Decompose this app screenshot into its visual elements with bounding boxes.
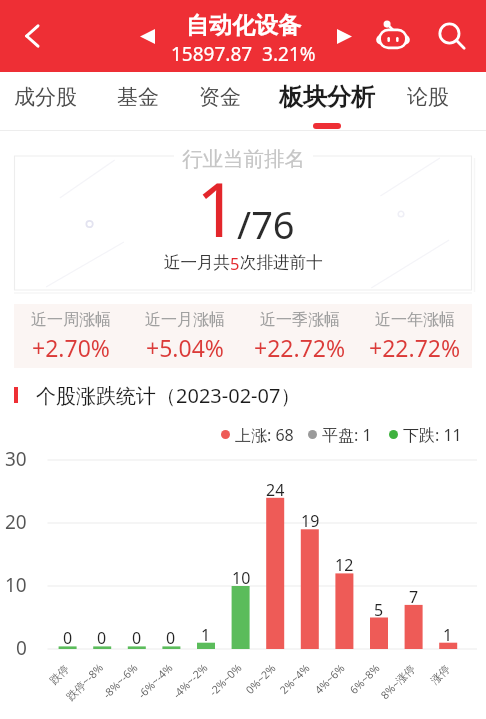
staticText: 0 [97, 627, 107, 649]
staticText: 近一月共 [164, 252, 230, 273]
button[interactable]: 资金 [184, 72, 256, 130]
staticText: 个股涨跌统计（2023-02-07） [36, 382, 301, 409]
button[interactable]: Previous sector [129, 18, 165, 54]
staticText: 次排进前十 [240, 252, 323, 273]
staticText: 成分股 [14, 84, 77, 110]
button[interactable]: 成分股 [9, 72, 81, 130]
staticText: 论股 [407, 84, 449, 110]
staticText: -8%~-6% [99, 660, 141, 701]
staticText: /76 [237, 198, 295, 250]
staticText: 板块分析 [279, 82, 375, 112]
staticText: 0 [166, 627, 176, 649]
button[interactable]: 论股 [392, 72, 464, 130]
staticText: +2.70% [32, 332, 110, 363]
staticText: 跌停~-8% [63, 660, 106, 703]
staticText: 1 [201, 624, 211, 646]
staticText: 15897.87 3.21% [171, 41, 316, 67]
staticText: 行业当前排名 [182, 146, 305, 172]
button[interactable]: 基金 [102, 72, 174, 130]
staticText: 6%~8% [346, 660, 383, 697]
button[interactable]: Search [430, 14, 474, 58]
staticText: 基金 [117, 84, 159, 110]
staticText: 10 [5, 572, 27, 598]
button[interactable]: AI assistant [371, 14, 415, 58]
staticText: 5 [374, 599, 384, 621]
staticText: 近一周涨幅 [31, 310, 111, 330]
staticText: 8%~涨停 [377, 661, 418, 702]
staticText: 24 [266, 479, 285, 501]
staticText: 1 [443, 624, 453, 646]
staticText: 12 [335, 554, 354, 576]
staticText: 资金 [199, 84, 241, 110]
staticText: 0 [63, 627, 73, 649]
staticText: 下跌: 11 [403, 424, 462, 444]
staticText: 上涨: 68 [235, 424, 294, 444]
staticText: 0%~2% [242, 660, 279, 697]
staticText: -6%~-4% [134, 660, 176, 701]
button[interactable]: 上涨: 68 [221, 424, 294, 444]
staticText: 近一季涨幅 [260, 310, 340, 330]
staticText: 19 [301, 510, 320, 532]
button[interactable]: 平盘: 1 [308, 424, 372, 444]
staticText: -4%~-2% [169, 660, 211, 701]
staticText: 自动化设备 [186, 11, 301, 40]
staticText: +22.72% [254, 332, 346, 363]
button[interactable]: 板块分析 [271, 72, 383, 130]
staticText: +5.04% [146, 332, 224, 363]
staticText: 2%~4% [276, 660, 313, 697]
staticText: 20 [5, 509, 27, 535]
staticText: 30 [5, 446, 27, 472]
staticText: -2%~0% [206, 660, 244, 699]
button[interactable]: Next sector [326, 18, 362, 54]
staticText: 1 [196, 158, 239, 259]
staticText: 跌停 [47, 662, 73, 688]
staticText: 7 [409, 586, 419, 608]
staticText: +22.72% [369, 332, 461, 363]
button[interactable]: Back [8, 12, 56, 60]
staticText: 近一年涨幅 [375, 310, 455, 330]
staticText: 涨停 [428, 662, 454, 688]
staticText: 4%~6% [311, 660, 348, 697]
button[interactable]: 下跌: 11 [389, 424, 462, 444]
staticText: 0 [16, 635, 27, 661]
staticText: 10 [232, 567, 251, 589]
staticText: 0 [132, 627, 142, 649]
staticText: 近一月涨幅 [145, 310, 225, 330]
staticText: 5 [230, 252, 240, 274]
staticText: 平盘: 1 [322, 424, 372, 444]
